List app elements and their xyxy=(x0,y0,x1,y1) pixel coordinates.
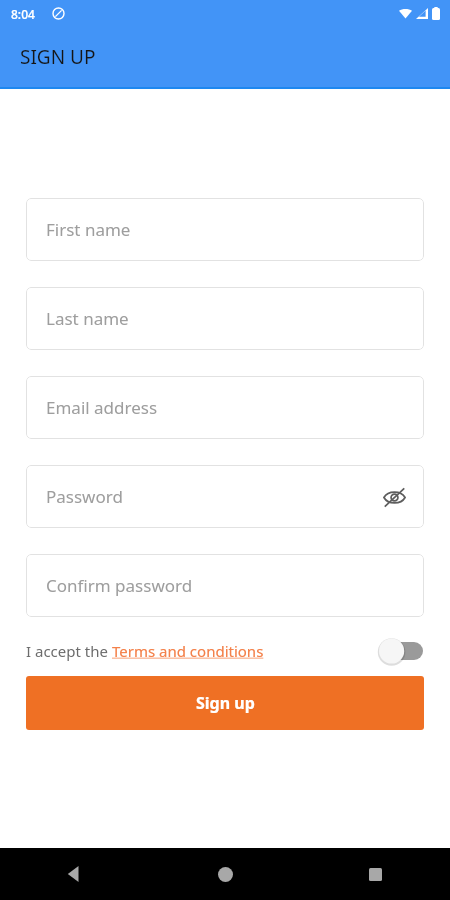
staticText: I accept the xyxy=(26,641,112,661)
button[interactable]: First name xyxy=(26,198,424,261)
staticText: Email address xyxy=(46,396,158,419)
staticText: 8:04 xyxy=(11,6,35,22)
button[interactable]: Back xyxy=(0,848,150,900)
button[interactable]: Last name xyxy=(26,287,424,350)
button[interactable]: Confirm password xyxy=(26,554,424,617)
button[interactable]: Recent apps xyxy=(300,848,450,900)
staticText: SIGN UP xyxy=(20,44,96,70)
staticText: Sign up xyxy=(196,692,255,714)
button[interactable]: I accept the xyxy=(26,641,264,661)
staticText: Confirm password xyxy=(46,574,193,597)
button[interactable]: Sign up xyxy=(26,676,424,730)
staticText: Last name xyxy=(46,307,129,330)
staticText: Terms and conditions xyxy=(112,641,264,661)
button[interactable]: Show password xyxy=(376,479,412,515)
staticText: First name xyxy=(46,218,131,241)
button[interactable]: Password xyxy=(26,465,424,528)
button[interactable]: Email address xyxy=(26,376,424,439)
button[interactable]: Home xyxy=(150,848,300,900)
button[interactable]: Accept terms toggle xyxy=(378,636,424,666)
staticText: Password xyxy=(46,485,123,508)
